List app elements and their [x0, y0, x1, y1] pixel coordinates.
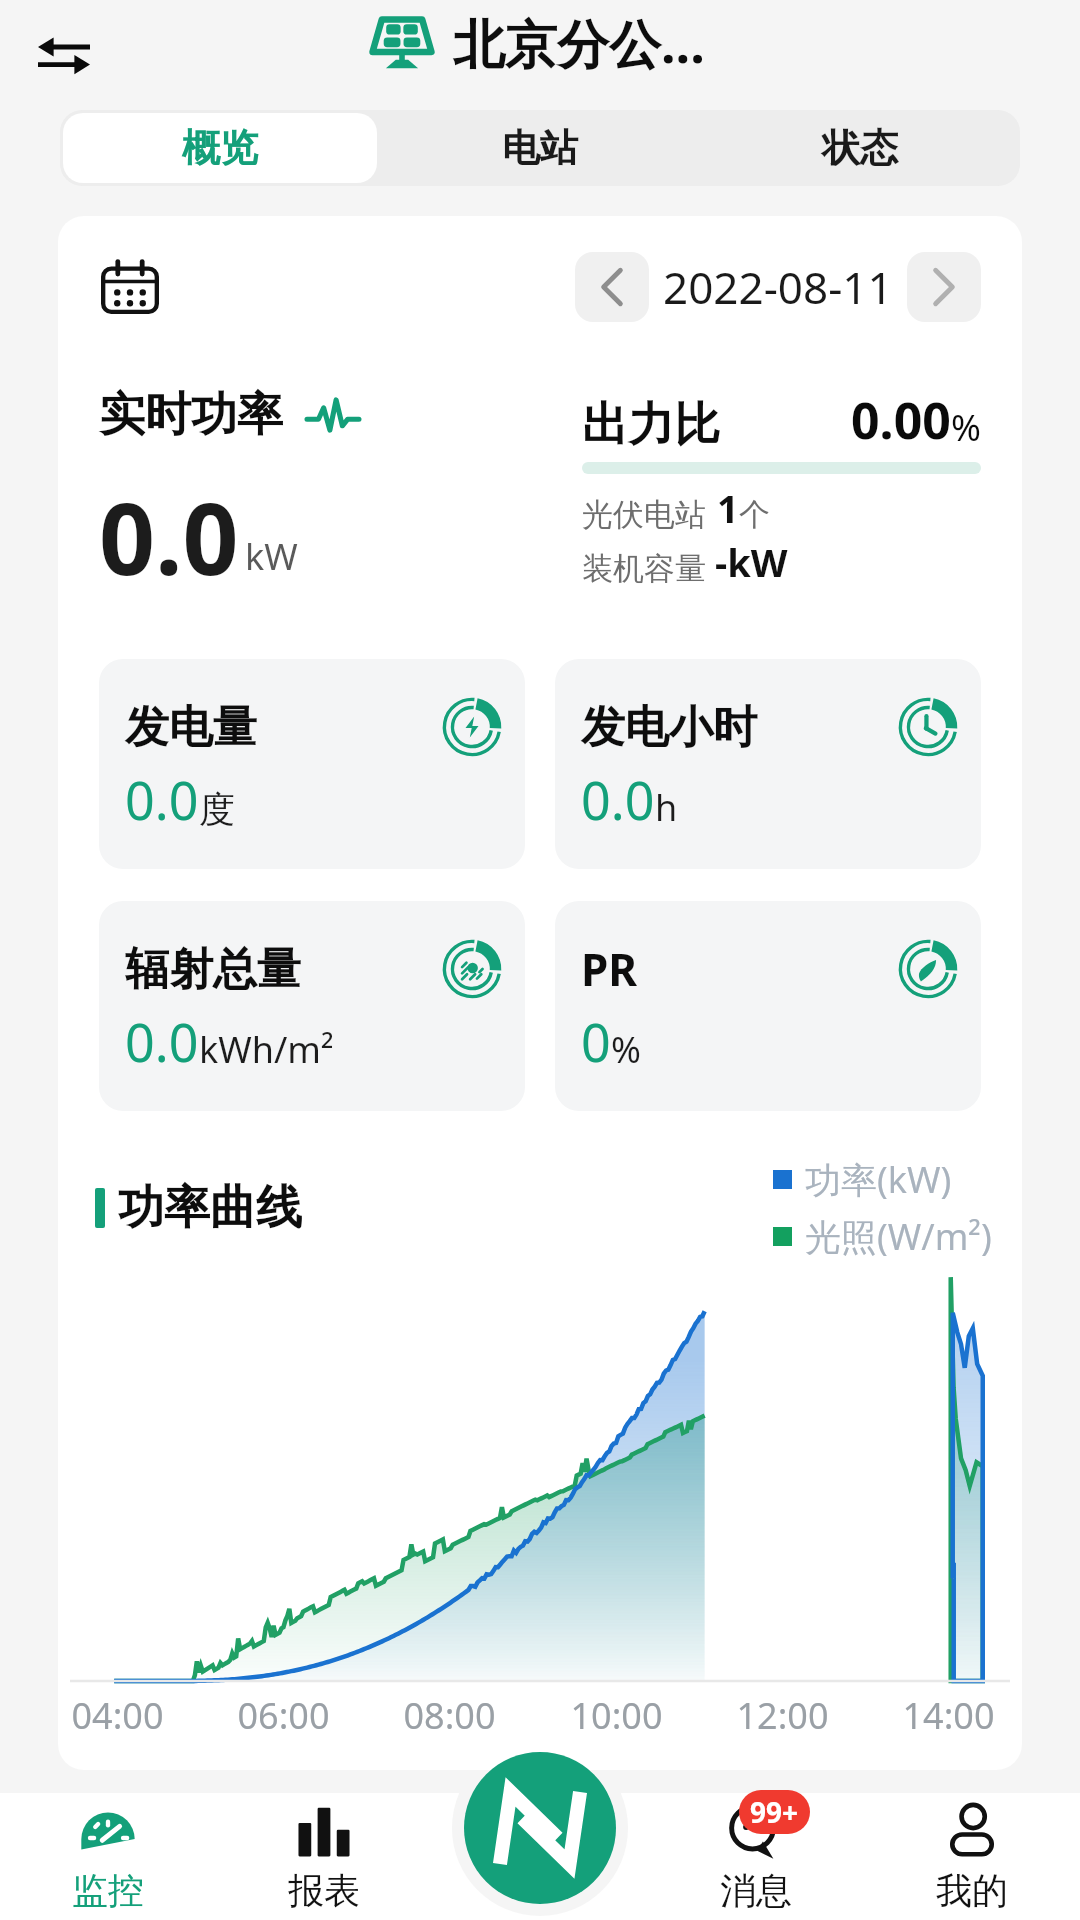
button[interactable]: 我的 [864, 1793, 1080, 1920]
button[interactable]: Calendar [99, 256, 161, 318]
button[interactable]: 电站 [383, 113, 697, 183]
staticText: 个 [739, 495, 770, 534]
staticText: 装机容量 [582, 549, 706, 588]
staticText: 1 [717, 482, 739, 534]
staticText: 辐射总量 [125, 942, 301, 997]
staticText: 光伏电站 [582, 495, 706, 534]
staticText: 实时功率 [99, 386, 283, 444]
staticText: % [951, 403, 981, 452]
button[interactable]: 辐射总量 [99, 901, 525, 1111]
staticText: 报表 [288, 1868, 360, 1913]
staticText: 北京分公... [453, 7, 705, 78]
staticText: 消息 [720, 1868, 792, 1913]
staticText: 光照(W/m²) [805, 1212, 992, 1261]
staticText: 概览 [182, 124, 258, 172]
staticText: h [655, 783, 678, 832]
staticText: 0.0 [125, 764, 199, 835]
staticText: % [611, 1025, 641, 1074]
button[interactable]: 99+ [648, 1793, 864, 1920]
staticText: 发电量 [125, 700, 257, 755]
button[interactable]: Home [464, 1752, 616, 1904]
button[interactable]: 监控 [0, 1793, 216, 1920]
button[interactable]: 发电量 [99, 659, 525, 869]
staticText: 14:00 [902, 1691, 995, 1740]
staticText: 我的 [936, 1868, 1008, 1913]
button[interactable]: 状态 [703, 113, 1017, 183]
button[interactable]: 报表 [216, 1793, 432, 1920]
staticText: 度 [199, 787, 235, 832]
button[interactable]: Switch station [28, 19, 100, 91]
staticText: kWh/m² [199, 1025, 334, 1074]
staticText: 功率曲线 [118, 1179, 302, 1237]
staticText: kW [245, 532, 298, 581]
staticText: 99+ [750, 1793, 799, 1831]
staticText: 0.0 [99, 470, 239, 603]
staticText: 12:00 [736, 1691, 829, 1740]
staticText: 0 [581, 1006, 611, 1077]
button[interactable]: Previous day [575, 252, 649, 322]
staticText: 2022-08-11 [663, 257, 893, 317]
staticText: 0.00 [851, 386, 951, 454]
staticText: 0.0 [581, 764, 655, 835]
staticText: 04:00 [71, 1691, 164, 1740]
staticText: PR [581, 939, 638, 999]
staticText: 监控 [72, 1868, 144, 1913]
button[interactable]: 概览 [63, 113, 377, 183]
staticText: 功率(kW) [805, 1155, 952, 1204]
staticText: 10:00 [570, 1691, 663, 1740]
button[interactable]: PR [555, 901, 981, 1111]
staticText: 06:00 [237, 1691, 330, 1740]
staticText: 发电小时 [581, 700, 757, 755]
button[interactable]: 发电小时 [555, 659, 981, 869]
button[interactable]: Next day [907, 252, 981, 322]
staticText: 出力比 [582, 396, 720, 454]
staticText: -kW [715, 536, 788, 588]
staticText: 电站 [502, 124, 578, 172]
staticText: 状态 [822, 124, 898, 172]
staticText: 08:00 [403, 1691, 496, 1740]
staticText: 0.0 [125, 1006, 199, 1077]
